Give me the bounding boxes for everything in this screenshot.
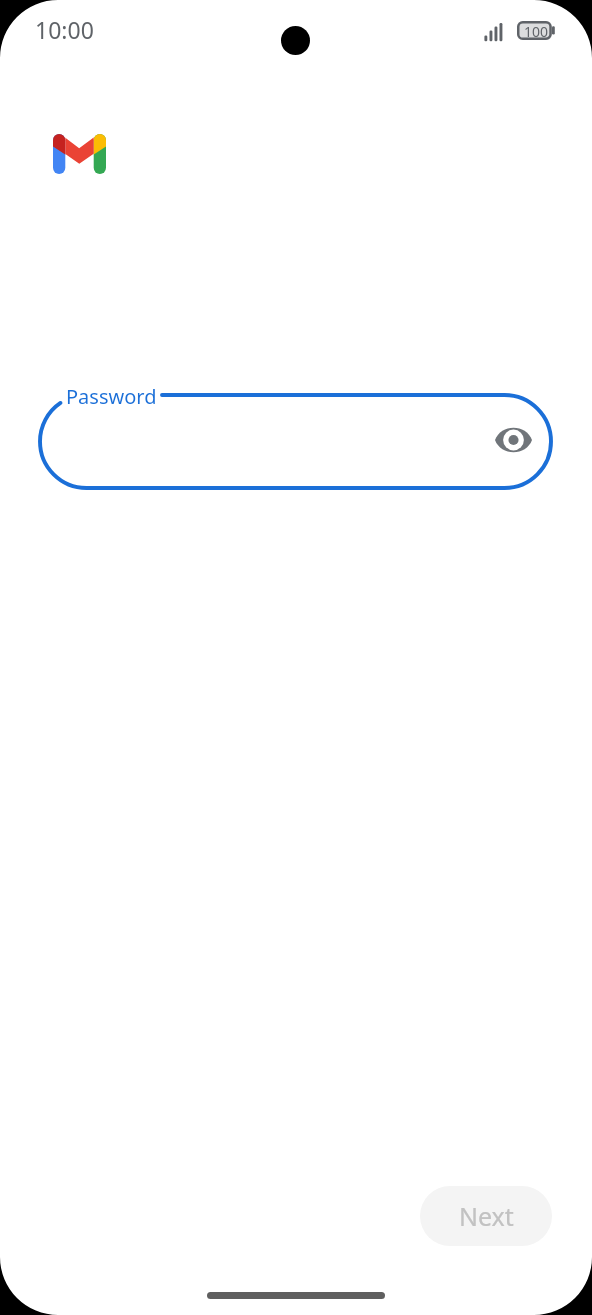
staticText: 100	[524, 22, 549, 41]
button[interactable]: Next	[420, 1186, 552, 1246]
button[interactable]: Password	[38, 391, 553, 492]
staticText: Next	[459, 1199, 514, 1233]
button[interactable]: Show password	[487, 414, 539, 466]
staticText: Password	[66, 383, 157, 410]
staticText: 10:00	[35, 14, 94, 45]
